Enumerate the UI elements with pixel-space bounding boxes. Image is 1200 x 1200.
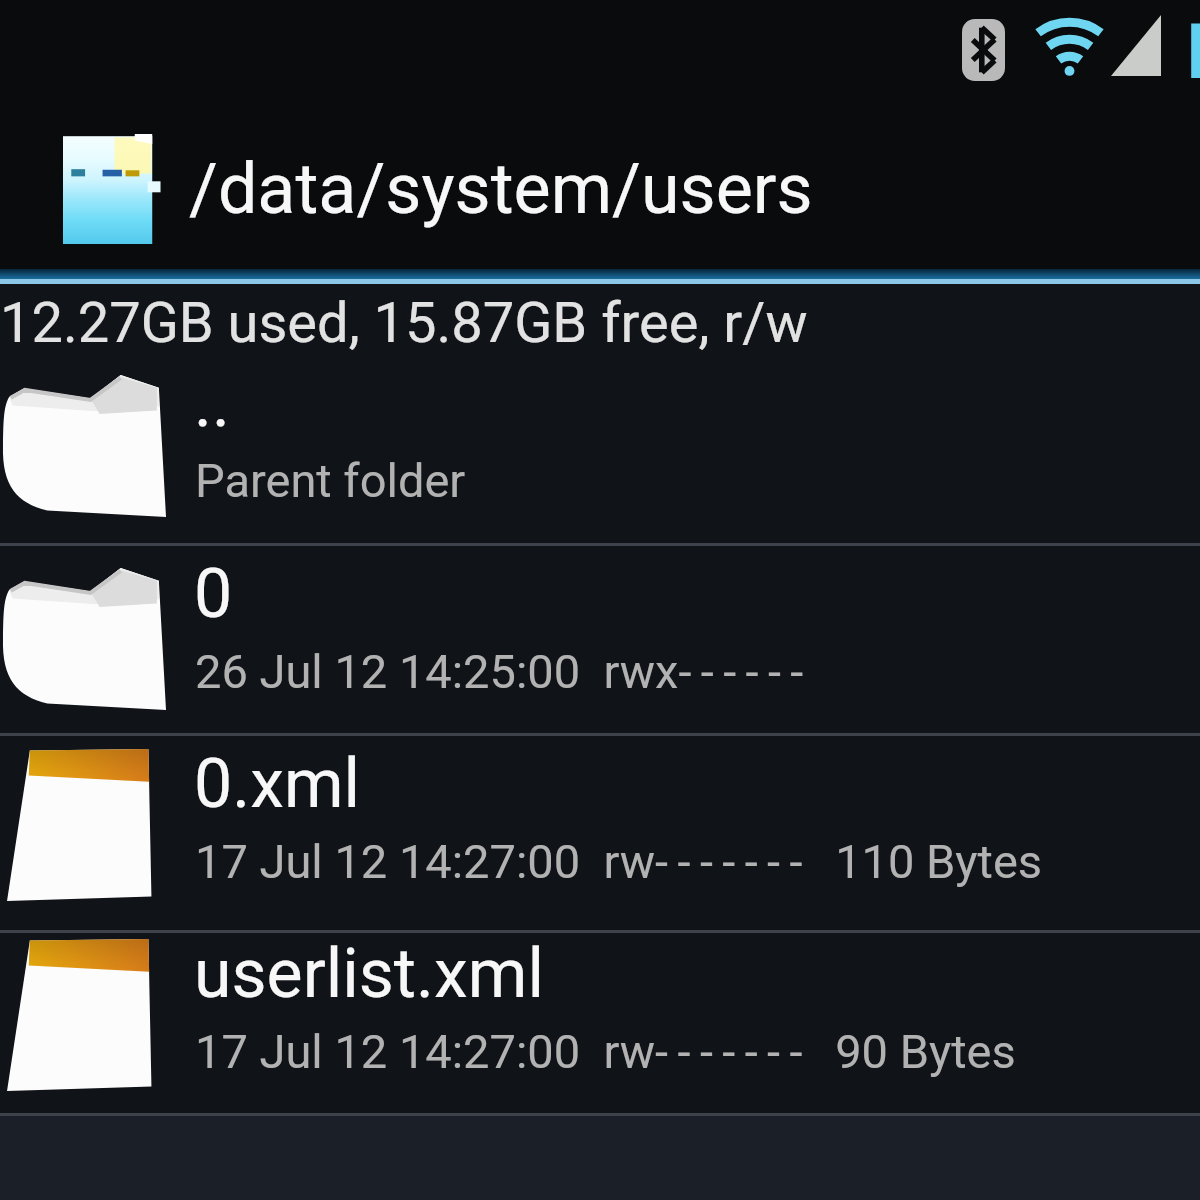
staticText: 17 Jul 12 14:27:00 rw------- 90 Bytes bbox=[195, 1024, 1016, 1079]
staticText: 0 bbox=[194, 554, 233, 634]
button[interactable]: /data/system/users bbox=[0, 118, 1200, 260]
button[interactable] bbox=[0, 933, 1200, 1113]
button[interactable] bbox=[0, 736, 1200, 930]
other: Bluetooth bbox=[962, 19, 1005, 81]
staticText: Parent folder bbox=[195, 453, 466, 508]
staticText: 12.27GB used, 15.87GB free, r/w bbox=[0, 290, 808, 356]
button[interactable] bbox=[0, 355, 1200, 543]
staticText: 26 Jul 12 14:25:00 rwx------ bbox=[195, 644, 813, 699]
button[interactable] bbox=[0, 546, 1200, 733]
staticText: 0.xml bbox=[194, 744, 361, 824]
staticText: 17 Jul 12 14:27:00 rw------- 110 Bytes bbox=[195, 834, 1043, 889]
other: Wi-Fi bbox=[1036, 17, 1103, 75]
staticText: userlist.xml bbox=[194, 934, 544, 1014]
staticText: .. bbox=[194, 363, 230, 443]
staticText: /data/system/users bbox=[189, 148, 813, 230]
other: Battery bbox=[1188, 20, 1200, 78]
other: Mobile signal bbox=[1111, 15, 1161, 76]
